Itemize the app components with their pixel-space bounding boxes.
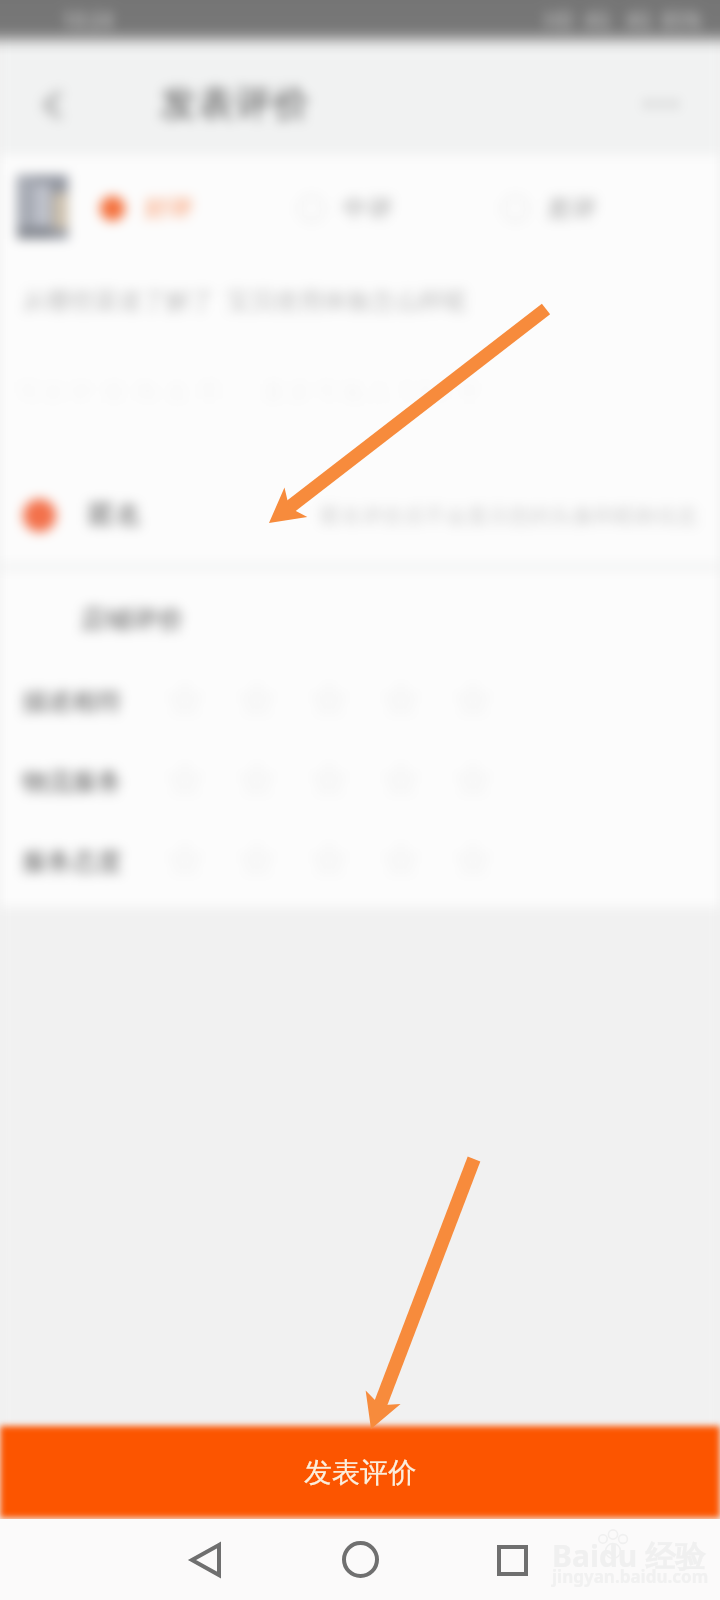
staticText: 从哪些渠道了解了 宝贝使用体验怎么样呢	[22, 283, 467, 316]
button[interactable]: Product thumbnail	[17, 175, 68, 239]
staticText: 中评	[343, 193, 393, 224]
button[interactable]: 差评	[502, 193, 597, 224]
staticText: jingyan.baidu.com	[552, 1565, 709, 1588]
staticText: 描述相符	[22, 686, 122, 717]
staticText: 发表评价	[160, 80, 311, 127]
staticText: HD 4G 4G 85%	[544, 6, 702, 33]
staticText: 写 好 评 得 淘 金 币 最 多 可 输 入 5 0 0 字	[18, 377, 480, 406]
button[interactable]: Home	[324, 1523, 396, 1595]
staticText: 匿名评价后不会显示您的头像和昵称信息	[320, 503, 698, 529]
staticText: 店铺评价	[80, 603, 184, 636]
button[interactable]: 好评	[100, 193, 193, 223]
button[interactable]: 匿名	[23, 498, 142, 532]
staticText: 好评	[145, 193, 193, 223]
staticText: 服务态度	[22, 846, 122, 877]
staticText: Baidu 经验	[552, 1535, 706, 1576]
staticText: 匿名	[88, 498, 142, 532]
staticText: 物流服务	[22, 766, 122, 797]
staticText: 差评	[547, 193, 597, 224]
staticText: 10:24	[62, 6, 114, 33]
button[interactable]: Back	[32, 84, 74, 126]
staticText: 发表评价	[304, 1455, 416, 1490]
button[interactable]: 中评	[298, 193, 393, 224]
button[interactable]: 发表评价	[0, 1426, 720, 1518]
button[interactable]: Back	[169, 1524, 241, 1596]
button[interactable]: Recent apps	[476, 1524, 548, 1596]
